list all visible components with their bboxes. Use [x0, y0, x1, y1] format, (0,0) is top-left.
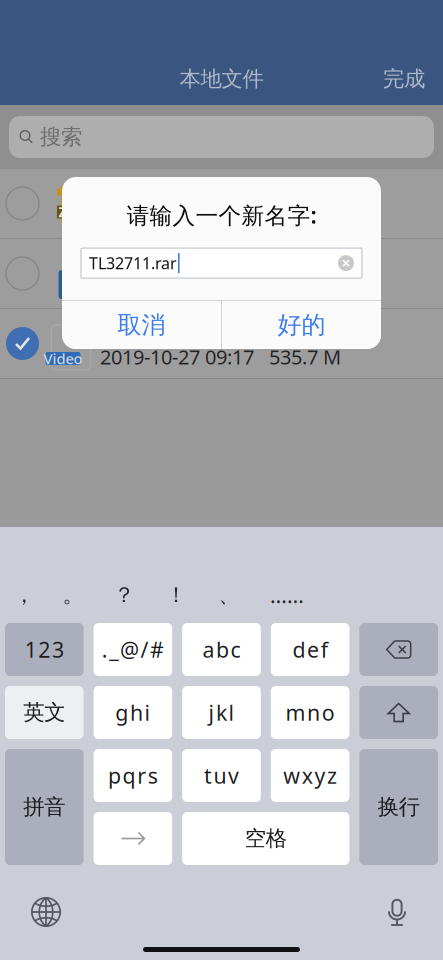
button[interactable]: 取消	[62, 301, 221, 349]
staticText: ？	[113, 582, 134, 608]
staticText: ._@/#	[102, 635, 164, 664]
staticText: 本地文件	[179, 66, 263, 92]
button[interactable]: ._@/#	[94, 623, 172, 676]
staticText: ！	[165, 582, 186, 608]
staticText: 完成	[383, 66, 425, 92]
button[interactable]: 换行	[359, 749, 438, 865]
staticText: ghi	[115, 698, 150, 727]
button[interactable]: mno	[271, 686, 349, 739]
button[interactable]: ghi	[94, 686, 172, 739]
button[interactable]: ，	[0, 575, 48, 615]
staticText: mno	[285, 698, 335, 727]
staticText: ZIP	[58, 203, 79, 221]
button[interactable]	[359, 686, 438, 739]
button[interactable]: 、	[202, 575, 256, 615]
button[interactable]: 123	[5, 623, 84, 676]
staticText: 拼音	[23, 794, 65, 820]
staticText: 2019-10-27 09:17 535.7 M	[100, 343, 341, 370]
button[interactable]: 拼音	[5, 749, 84, 865]
staticText: wxyz	[283, 761, 337, 790]
staticText: def	[292, 635, 328, 664]
staticText: 请输入一个新名字:	[126, 200, 316, 230]
staticText: 搜索	[40, 124, 82, 150]
button[interactable]	[94, 812, 172, 865]
button[interactable]: jkl	[182, 686, 261, 739]
staticText: abc	[202, 635, 241, 664]
button[interactable]: 。	[48, 575, 98, 615]
button[interactable]	[0, 239, 443, 308]
button[interactable]: tuv	[182, 749, 261, 802]
button[interactable]: 完成	[365, 60, 443, 98]
button[interactable]: abc	[182, 623, 261, 676]
button[interactable]: 好的	[222, 301, 381, 349]
staticText: 空格	[245, 825, 287, 852]
staticText: 英文	[23, 699, 65, 726]
staticText: 123	[25, 635, 64, 664]
staticText: ……	[270, 581, 304, 609]
button[interactable]: Dictation	[374, 890, 420, 934]
button[interactable]: Switch keyboard	[23, 890, 69, 934]
staticText: 换行	[378, 794, 420, 820]
staticText: TL32711.rar	[89, 252, 177, 274]
button[interactable]: Video	[0, 309, 443, 378]
button[interactable]: 搜索	[9, 116, 434, 158]
staticText: tuv	[204, 761, 239, 790]
button[interactable]	[359, 623, 438, 676]
button[interactable]: ZIP	[0, 169, 443, 238]
staticText: Video	[43, 349, 82, 368]
staticText: 好的	[277, 310, 325, 340]
staticText: 、	[218, 582, 239, 608]
button[interactable]: ……	[256, 575, 318, 615]
button[interactable]: pqrs	[94, 749, 172, 802]
button[interactable]: 英文	[5, 686, 84, 739]
staticText: 。	[62, 582, 83, 608]
staticText: ，	[13, 582, 34, 608]
button[interactable]: wxyz	[271, 749, 349, 802]
button[interactable]: ？	[98, 575, 150, 615]
staticText: 取消	[117, 310, 165, 340]
button[interactable]: def	[271, 623, 349, 676]
staticText: pqrs	[108, 761, 158, 790]
staticText: jkl	[208, 698, 235, 727]
button[interactable]: ！	[150, 575, 202, 615]
button[interactable]: 空格	[182, 812, 349, 865]
